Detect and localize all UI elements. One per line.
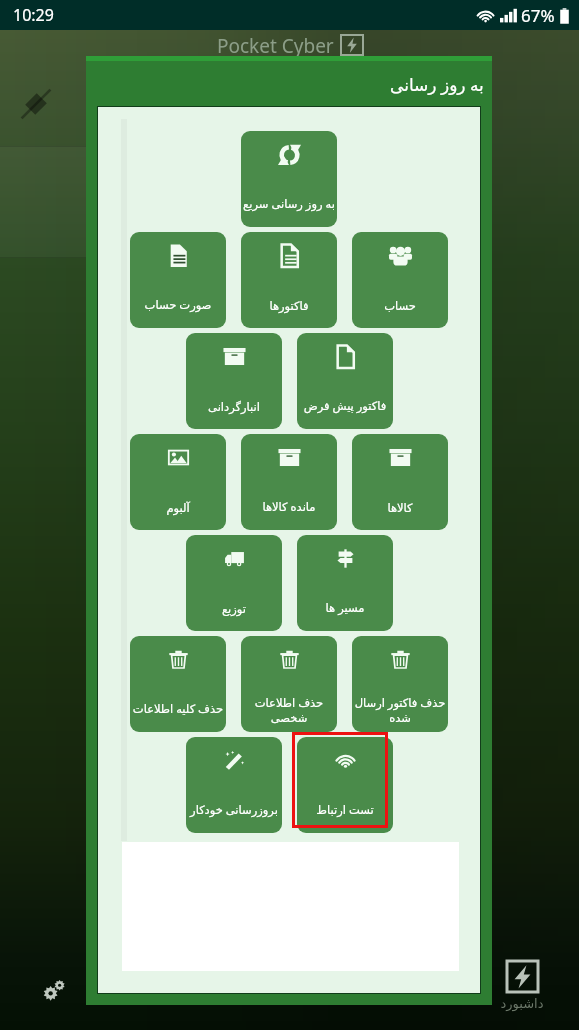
staticText: 10:29 [13,4,54,26]
button[interactable]: فاکتورها [241,232,337,328]
button[interactable]: حذف فاکتور ارسال شده [352,636,448,732]
button[interactable]: صورت حساب [130,232,226,328]
staticText: فاکتورها [243,299,335,312]
staticText: حذف اطلاعات شخصی [243,695,335,724]
button[interactable]: فاکتور پیش فرض [297,333,393,429]
button[interactable]: آلبوم [130,434,226,530]
staticText: انبارگردانی [188,400,280,413]
staticText: مسیر ها [299,600,391,616]
staticText: به روز رسانی [390,73,484,96]
staticText: به روز رسانی سریع [243,196,335,212]
button[interactable]: تست ارتباط [297,737,393,833]
button[interactable]: به روز رسانی سریع [241,131,337,227]
staticText: مانده کالاها [243,499,335,515]
button[interactable]: مسیر ها [297,535,393,631]
button[interactable]: حساب [352,232,448,328]
button[interactable]: انبارگردانی [186,333,282,429]
staticText: آلبوم [132,501,224,514]
staticText: صورت حساب [132,297,224,313]
staticText: کالاها [354,501,446,514]
staticText: داشبورد [490,996,554,1011]
button[interactable]: توزیع [186,535,282,631]
staticText: 67% [521,4,555,27]
staticText: فاکتور پیش فرض [299,398,391,414]
staticText: حذف کلیه اطلاعات [132,701,224,717]
button[interactable]: Settings [40,976,68,1004]
button[interactable]: مانده کالاها [241,434,337,530]
button[interactable]: کالاها [352,434,448,530]
button[interactable]: حذف اطلاعات شخصی [241,636,337,732]
staticText: توزیع [188,602,280,615]
button[interactable]: بروزرسانی خودکار [186,737,282,833]
staticText: Pocket Cyber [217,33,334,57]
staticText: تست ارتباط [299,802,391,818]
staticText: حساب [354,299,446,312]
staticText: حذف فاکتور ارسال شده [354,695,446,724]
staticText: بروزرسانی خودکار [188,802,280,818]
button[interactable]: داشبورد [490,960,554,1011]
button[interactable]: حذف کلیه اطلاعات [130,636,226,732]
